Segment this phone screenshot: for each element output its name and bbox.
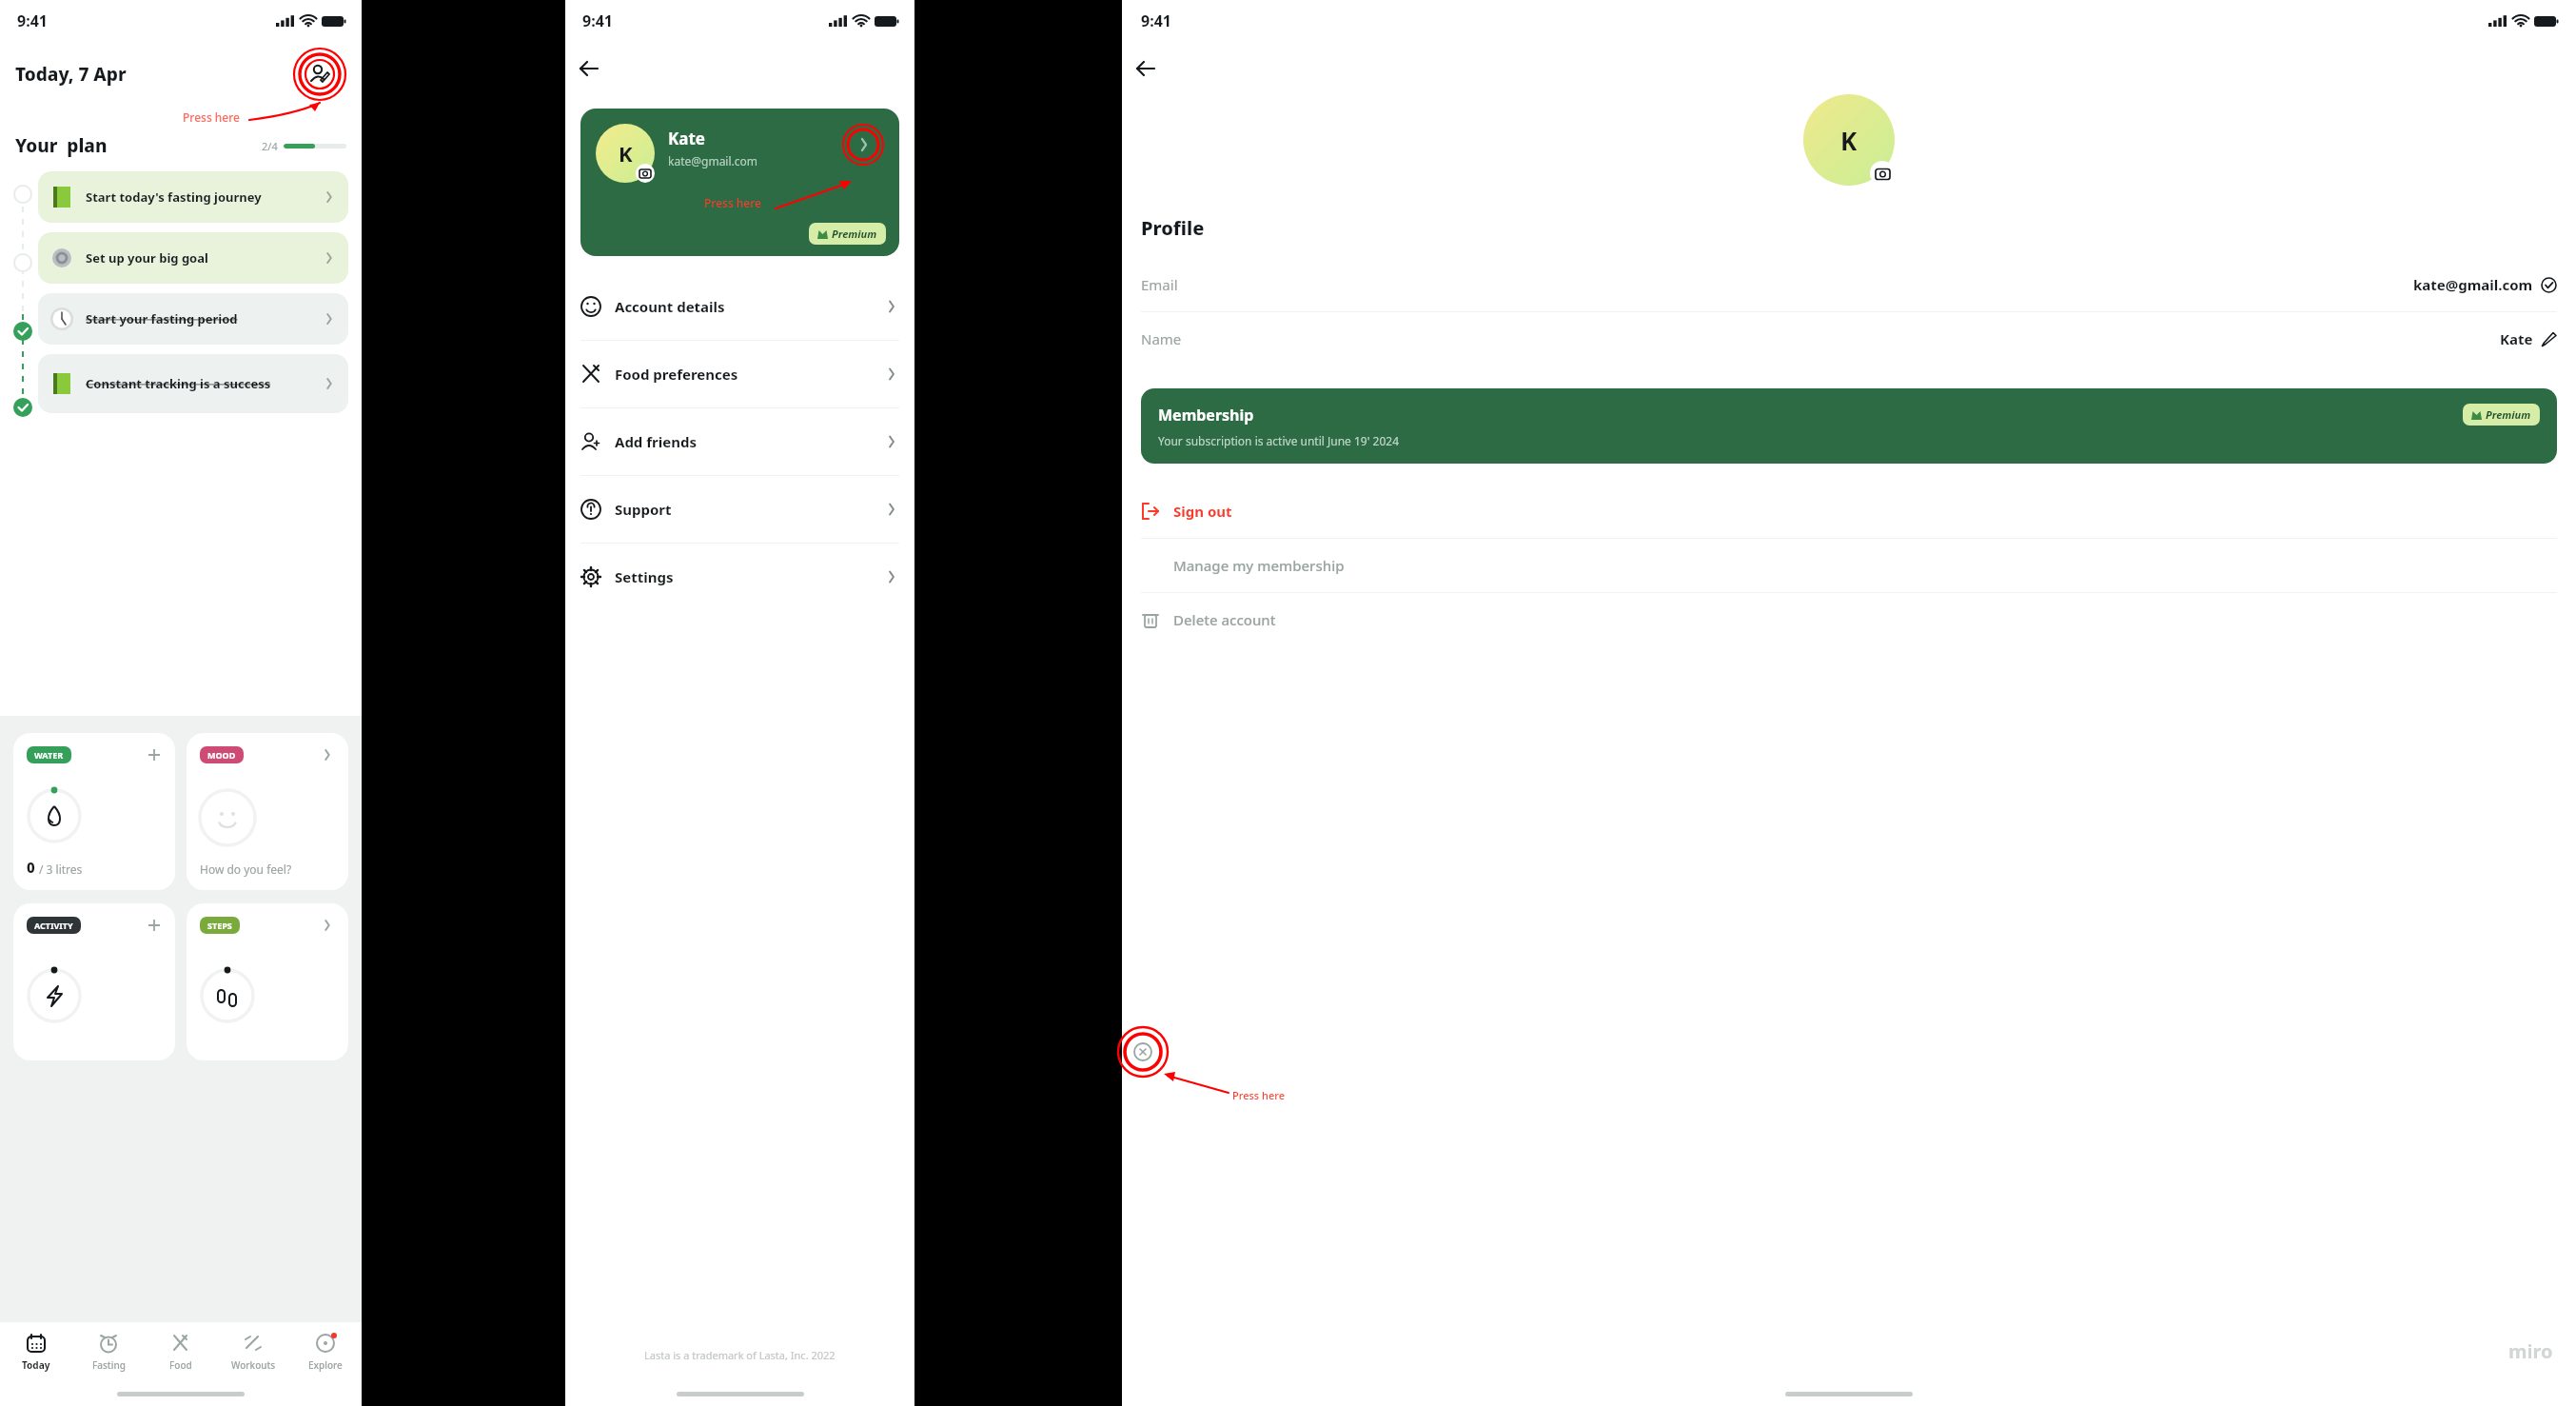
staticText: Food: [169, 1358, 192, 1372]
staticText: ACTIVITY: [34, 920, 73, 931]
staticText: Your plan: [15, 133, 108, 158]
staticText: Delete account: [1173, 610, 1276, 629]
button[interactable]: Explore: [289, 1322, 362, 1381]
staticText: Today: [22, 1358, 50, 1372]
staticText: Account details: [615, 297, 884, 316]
button[interactable]: Open profile: [842, 124, 884, 166]
staticText: K: [619, 139, 633, 168]
staticText: Add friends: [615, 432, 884, 451]
staticText: Lasta is a trademark of Lasta, Inc. 2022: [644, 1348, 836, 1362]
button[interactable]: Food preferences: [565, 341, 914, 407]
button[interactable]: Workouts: [217, 1322, 289, 1381]
button[interactable]: Change photo: [1870, 161, 1895, 186]
staticText: Sign out: [1173, 502, 1232, 521]
staticText: Kate: [668, 128, 705, 149]
button[interactable]: Settings: [565, 544, 914, 610]
button[interactable]: Support: [565, 476, 914, 543]
button[interactable]: Account details: [565, 273, 914, 340]
button[interactable]: Membership: [1141, 388, 2557, 464]
staticText: WATER: [34, 749, 64, 761]
button[interactable]: Start your fasting period: [38, 293, 348, 345]
button[interactable]: Set up your big goal: [38, 232, 348, 284]
button[interactable]: Start today's fasting journey: [38, 171, 348, 223]
staticText: Membership: [1158, 405, 1254, 426]
button[interactable]: Email: [1122, 258, 2576, 311]
staticText: STEPS: [207, 920, 232, 931]
staticText: Explore: [308, 1358, 343, 1372]
staticText: kate@gmail.com: [2413, 275, 2533, 294]
button[interactable]: Back: [579, 50, 611, 88]
staticText: 9:41: [17, 10, 48, 31]
other: Open: [320, 918, 335, 933]
button[interactable]: Manage my membership: [1122, 539, 2576, 592]
staticText: Press here: [183, 109, 240, 125]
staticText: Settings: [615, 567, 884, 586]
staticText: Profile: [1141, 215, 1205, 241]
button[interactable]: Name: [1122, 312, 2576, 366]
staticText: Support: [615, 500, 884, 519]
staticText: Press here: [1232, 1088, 1285, 1102]
staticText: K: [1840, 124, 1858, 157]
button[interactable]: MOOD: [187, 733, 348, 890]
staticText: Kate: [2500, 329, 2533, 348]
button[interactable]: Change photo: [636, 164, 655, 183]
button[interactable]: Constant tracking is a success: [38, 354, 348, 413]
button[interactable]: Edit profile: [293, 48, 346, 101]
staticText: Premium: [832, 227, 877, 241]
button[interactable]: K: [580, 109, 899, 256]
staticText: Today, 7 Apr: [15, 62, 127, 87]
staticText: Manage my membership: [1173, 556, 1345, 575]
button[interactable]: Food: [145, 1322, 217, 1381]
staticText: Your subscription is active until June 1…: [1158, 433, 1399, 448]
staticText: How do you feel?: [200, 861, 292, 877]
staticText: Constant tracking is a success: [86, 375, 322, 392]
button[interactable]: WATER: [13, 733, 175, 890]
other: Add: [147, 918, 162, 933]
staticText: Email: [1141, 275, 1178, 294]
button[interactable]: Today: [0, 1322, 72, 1381]
other: Open: [320, 747, 335, 762]
staticText: Workouts: [231, 1358, 276, 1372]
staticText: 2/4: [262, 139, 278, 153]
button[interactable]: Sign out: [1122, 485, 2576, 538]
button[interactable]: STEPS: [187, 903, 348, 1060]
button[interactable]: Delete account: [1122, 593, 2576, 646]
button[interactable]: Add friends: [565, 408, 914, 475]
other: Add: [147, 747, 162, 762]
staticText: 0: [27, 858, 35, 877]
staticText: Press here: [704, 195, 761, 210]
staticText: kate@gmail.com: [668, 153, 758, 168]
staticText: Start today's fasting journey: [86, 188, 322, 206]
staticText: miro: [2508, 1338, 2553, 1364]
button[interactable]: Fasting: [72, 1322, 145, 1381]
staticText: 9:41: [582, 10, 613, 31]
staticText: 9:41: [1141, 10, 1171, 31]
staticText: Food preferences: [615, 365, 884, 384]
staticText: Start your fasting period: [86, 310, 322, 327]
button[interactable]: ACTIVITY: [13, 903, 175, 1060]
staticText: / 3 litres: [39, 861, 83, 877]
staticText: Fasting: [92, 1358, 126, 1372]
button[interactable]: Back: [1135, 50, 1168, 88]
staticText: MOOD: [207, 749, 236, 761]
staticText: Premium: [2486, 407, 2531, 422]
staticText: Name: [1141, 329, 1182, 348]
staticText: Set up your big goal: [86, 249, 322, 267]
